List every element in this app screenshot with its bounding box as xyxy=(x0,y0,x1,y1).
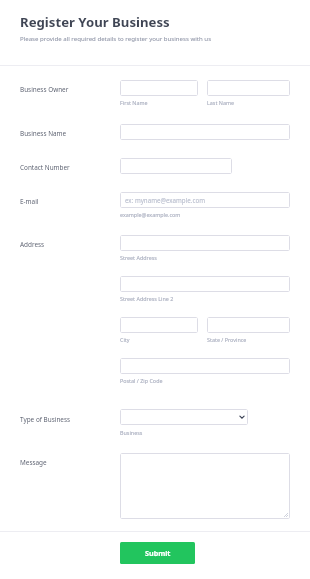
staticText: City xyxy=(120,336,130,343)
button[interactable]: First Name xyxy=(120,80,198,96)
staticText: E-mail xyxy=(20,197,39,206)
button[interactable]: Contact Number xyxy=(120,158,232,174)
staticText: Business xyxy=(120,429,143,436)
button[interactable]: Postal / Zip Code xyxy=(120,358,290,374)
staticText: Type of Business xyxy=(20,415,71,424)
button[interactable]: Submit xyxy=(120,542,195,564)
button[interactable]: City xyxy=(120,317,198,333)
staticText: First Name xyxy=(120,99,148,106)
button[interactable]: Street Address Line 2 xyxy=(120,276,290,292)
staticText: Business Name xyxy=(20,129,67,138)
staticText: Address xyxy=(20,240,45,249)
button[interactable]: State / Province xyxy=(207,317,290,333)
staticText: Business Owner xyxy=(20,85,69,94)
staticText: Street Address xyxy=(120,254,157,261)
staticText: Register Your Business xyxy=(20,13,170,31)
staticText: State / Province xyxy=(207,336,247,343)
button[interactable]: Last Name xyxy=(207,80,290,96)
staticText: Last Name xyxy=(207,99,234,106)
button[interactable]: Street Address xyxy=(120,235,290,251)
staticText: Contact Number xyxy=(20,163,70,172)
staticText: Message xyxy=(20,458,47,467)
staticText: Street Address Line 2 xyxy=(120,295,174,302)
staticText: Please provide all required details to r… xyxy=(20,34,212,42)
button[interactable]: Type of Business dropdown xyxy=(120,409,248,425)
button[interactable]: E-mail xyxy=(120,192,290,208)
button[interactable]: Message xyxy=(120,453,290,519)
button[interactable]: Business Name xyxy=(120,124,290,140)
staticText: ex: myname@example.com xyxy=(125,196,205,204)
staticText: Postal / Zip Code xyxy=(120,377,163,384)
staticText: example@example.com xyxy=(120,211,181,218)
staticText: Submit xyxy=(145,548,171,558)
